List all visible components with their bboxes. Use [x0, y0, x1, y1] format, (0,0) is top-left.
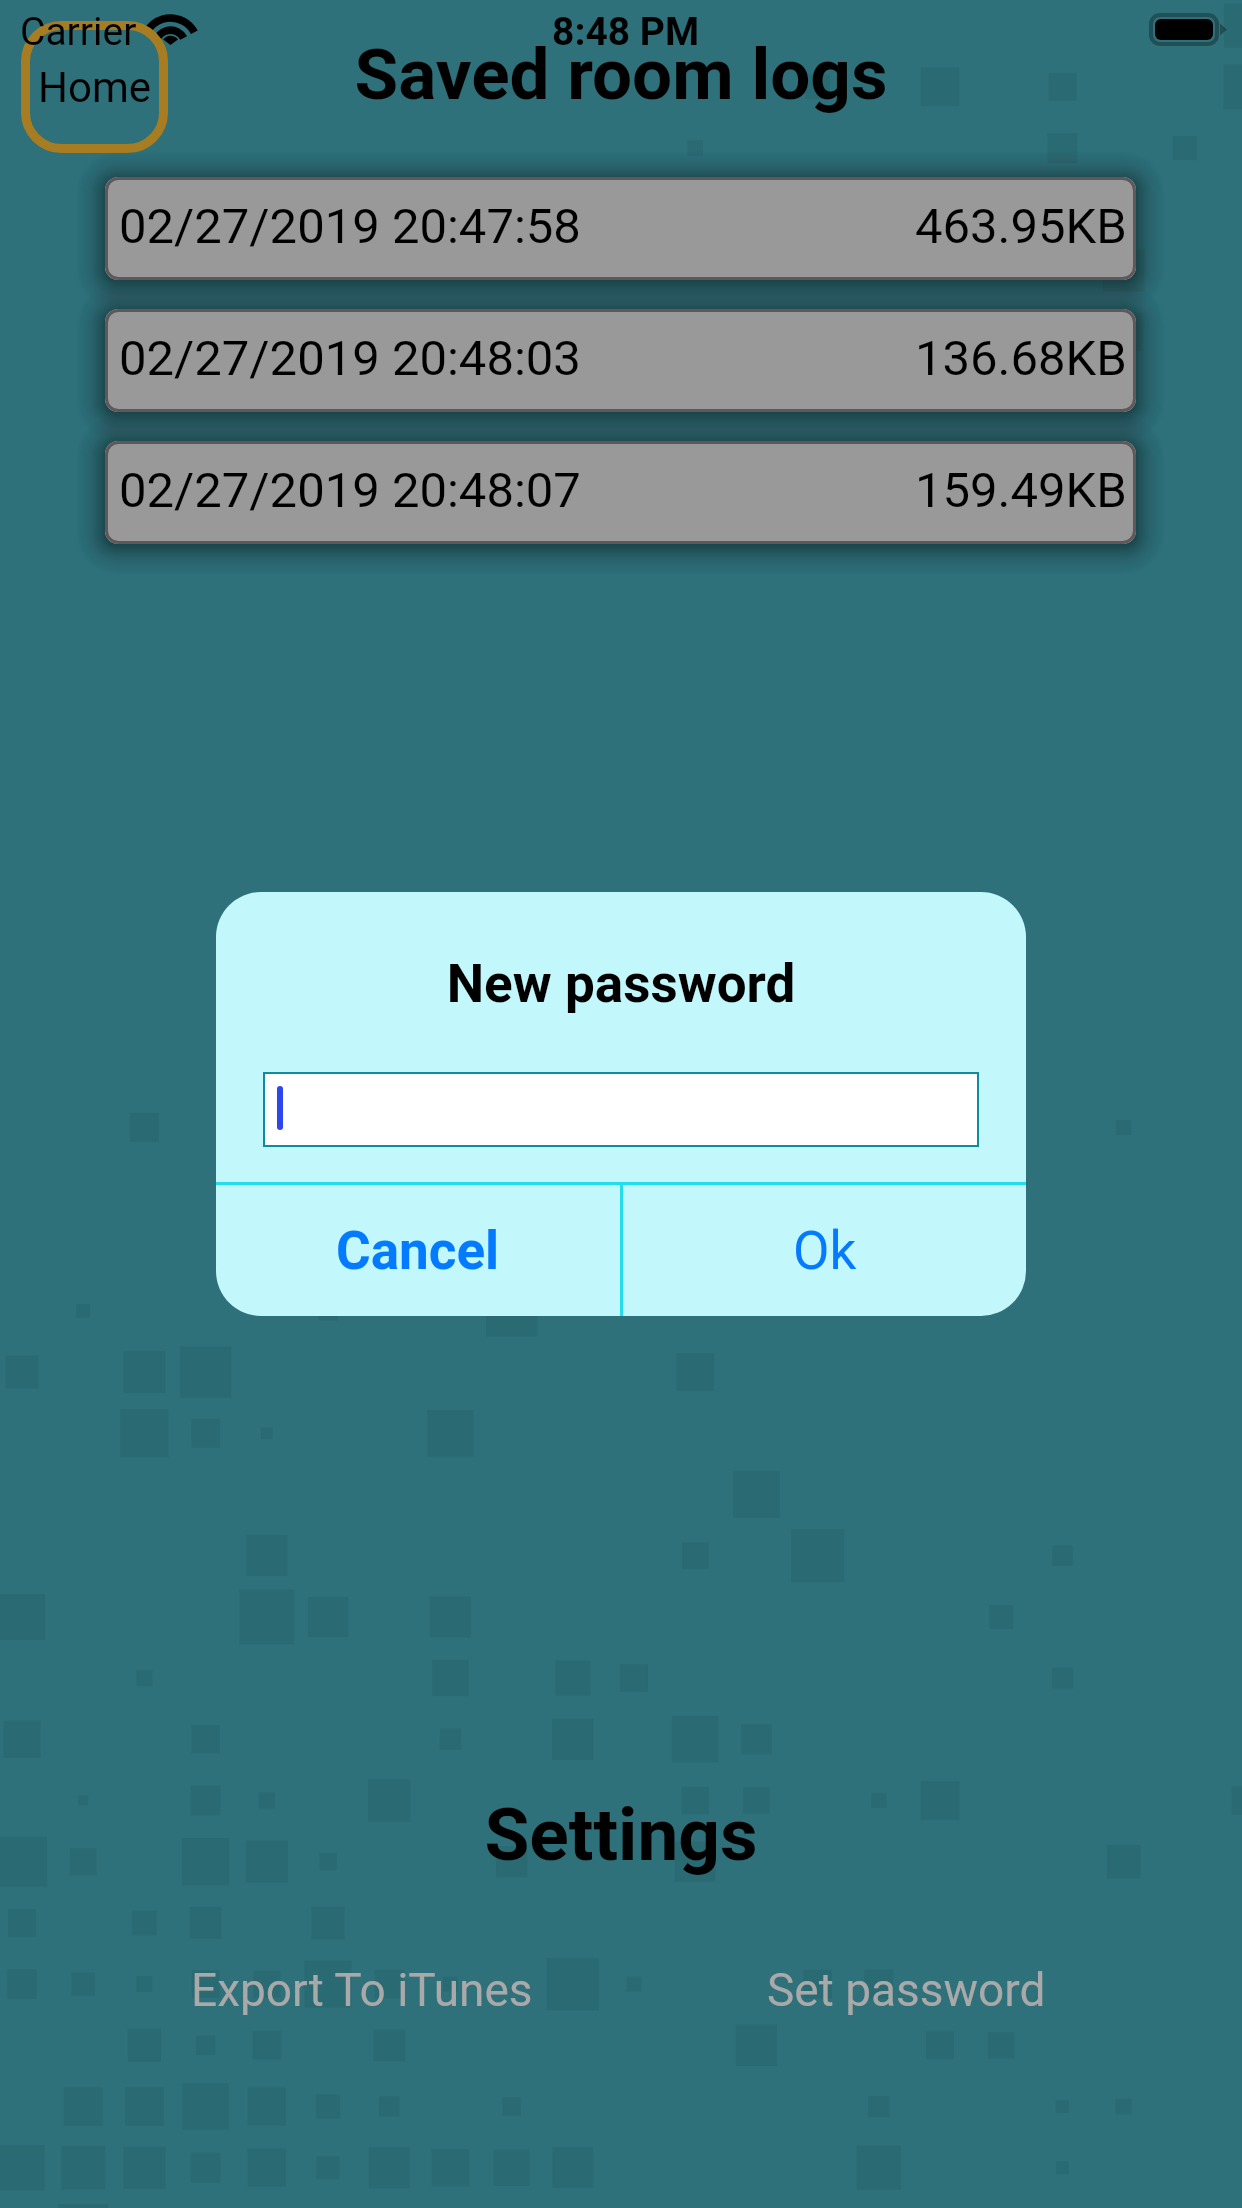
staticText: Set password — [767, 1963, 1046, 2017]
staticText: Home — [38, 63, 152, 112]
staticText: 02/27/2019 20:48:03 — [119, 330, 581, 387]
staticText: New password — [216, 953, 1026, 1015]
staticText: 159.49KB — [915, 462, 1127, 519]
button[interactable]: Export To iTunes — [172, 1953, 552, 2027]
staticText: Carrier — [20, 9, 137, 55]
button[interactable]: Set password — [746, 1953, 1066, 2027]
other: Battery full — [1149, 13, 1228, 46]
staticText: Export To iTunes — [191, 1963, 533, 2017]
staticText: 8:48 PM — [552, 9, 700, 55]
button[interactable]: Cancel — [216, 1185, 620, 1316]
staticText: 02/27/2019 20:47:58 — [119, 198, 581, 255]
button[interactable]: Password field — [264, 1073, 978, 1146]
other: Wi-Fi signal — [149, 14, 192, 45]
button[interactable]: 02/27/2019 20:47:58 — [105, 177, 1136, 280]
button[interactable]: Home — [21, 21, 168, 153]
staticText: 136.68KB — [915, 330, 1127, 387]
staticText: Settings — [0, 1792, 1242, 1878]
staticText: Ok — [793, 1220, 857, 1282]
button[interactable]: Ok — [623, 1185, 1026, 1316]
staticText: 463.95KB — [915, 198, 1127, 255]
button[interactable]: 02/27/2019 20:48:07 — [105, 441, 1136, 544]
staticText: Cancel — [336, 1220, 500, 1282]
staticText: Saved room logs — [0, 33, 1242, 116]
button[interactable]: 02/27/2019 20:48:03 — [105, 309, 1136, 412]
staticText: 02/27/2019 20:48:07 — [119, 462, 581, 519]
